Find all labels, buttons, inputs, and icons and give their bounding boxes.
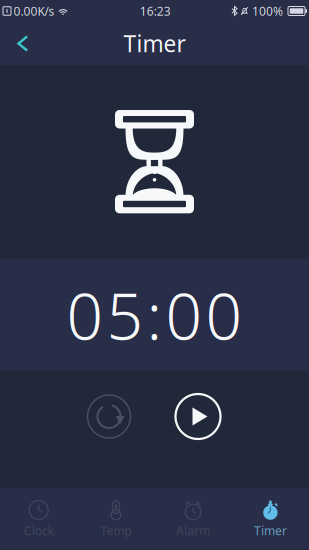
staticText: Temp bbox=[100, 522, 131, 538]
button[interactable]: Alarm bbox=[154, 488, 232, 550]
staticText: 16:23 bbox=[140, 3, 171, 19]
staticText: Timer bbox=[123, 28, 185, 58]
button[interactable]: Reset bbox=[81, 388, 137, 444]
staticText: Alarm bbox=[176, 522, 210, 538]
staticText: 0.00K/s bbox=[13, 3, 54, 19]
button[interactable]: Timer bbox=[232, 488, 309, 550]
button[interactable]: Clock bbox=[0, 488, 77, 550]
staticText: 100% bbox=[252, 3, 283, 19]
staticText: Clock bbox=[24, 522, 54, 538]
staticText: 05:00 bbox=[66, 272, 242, 357]
staticText: Timer bbox=[254, 522, 287, 538]
button[interactable]: Temp bbox=[77, 488, 154, 550]
button[interactable]: Start bbox=[170, 388, 226, 444]
button[interactable]: Back bbox=[0, 22, 44, 65]
